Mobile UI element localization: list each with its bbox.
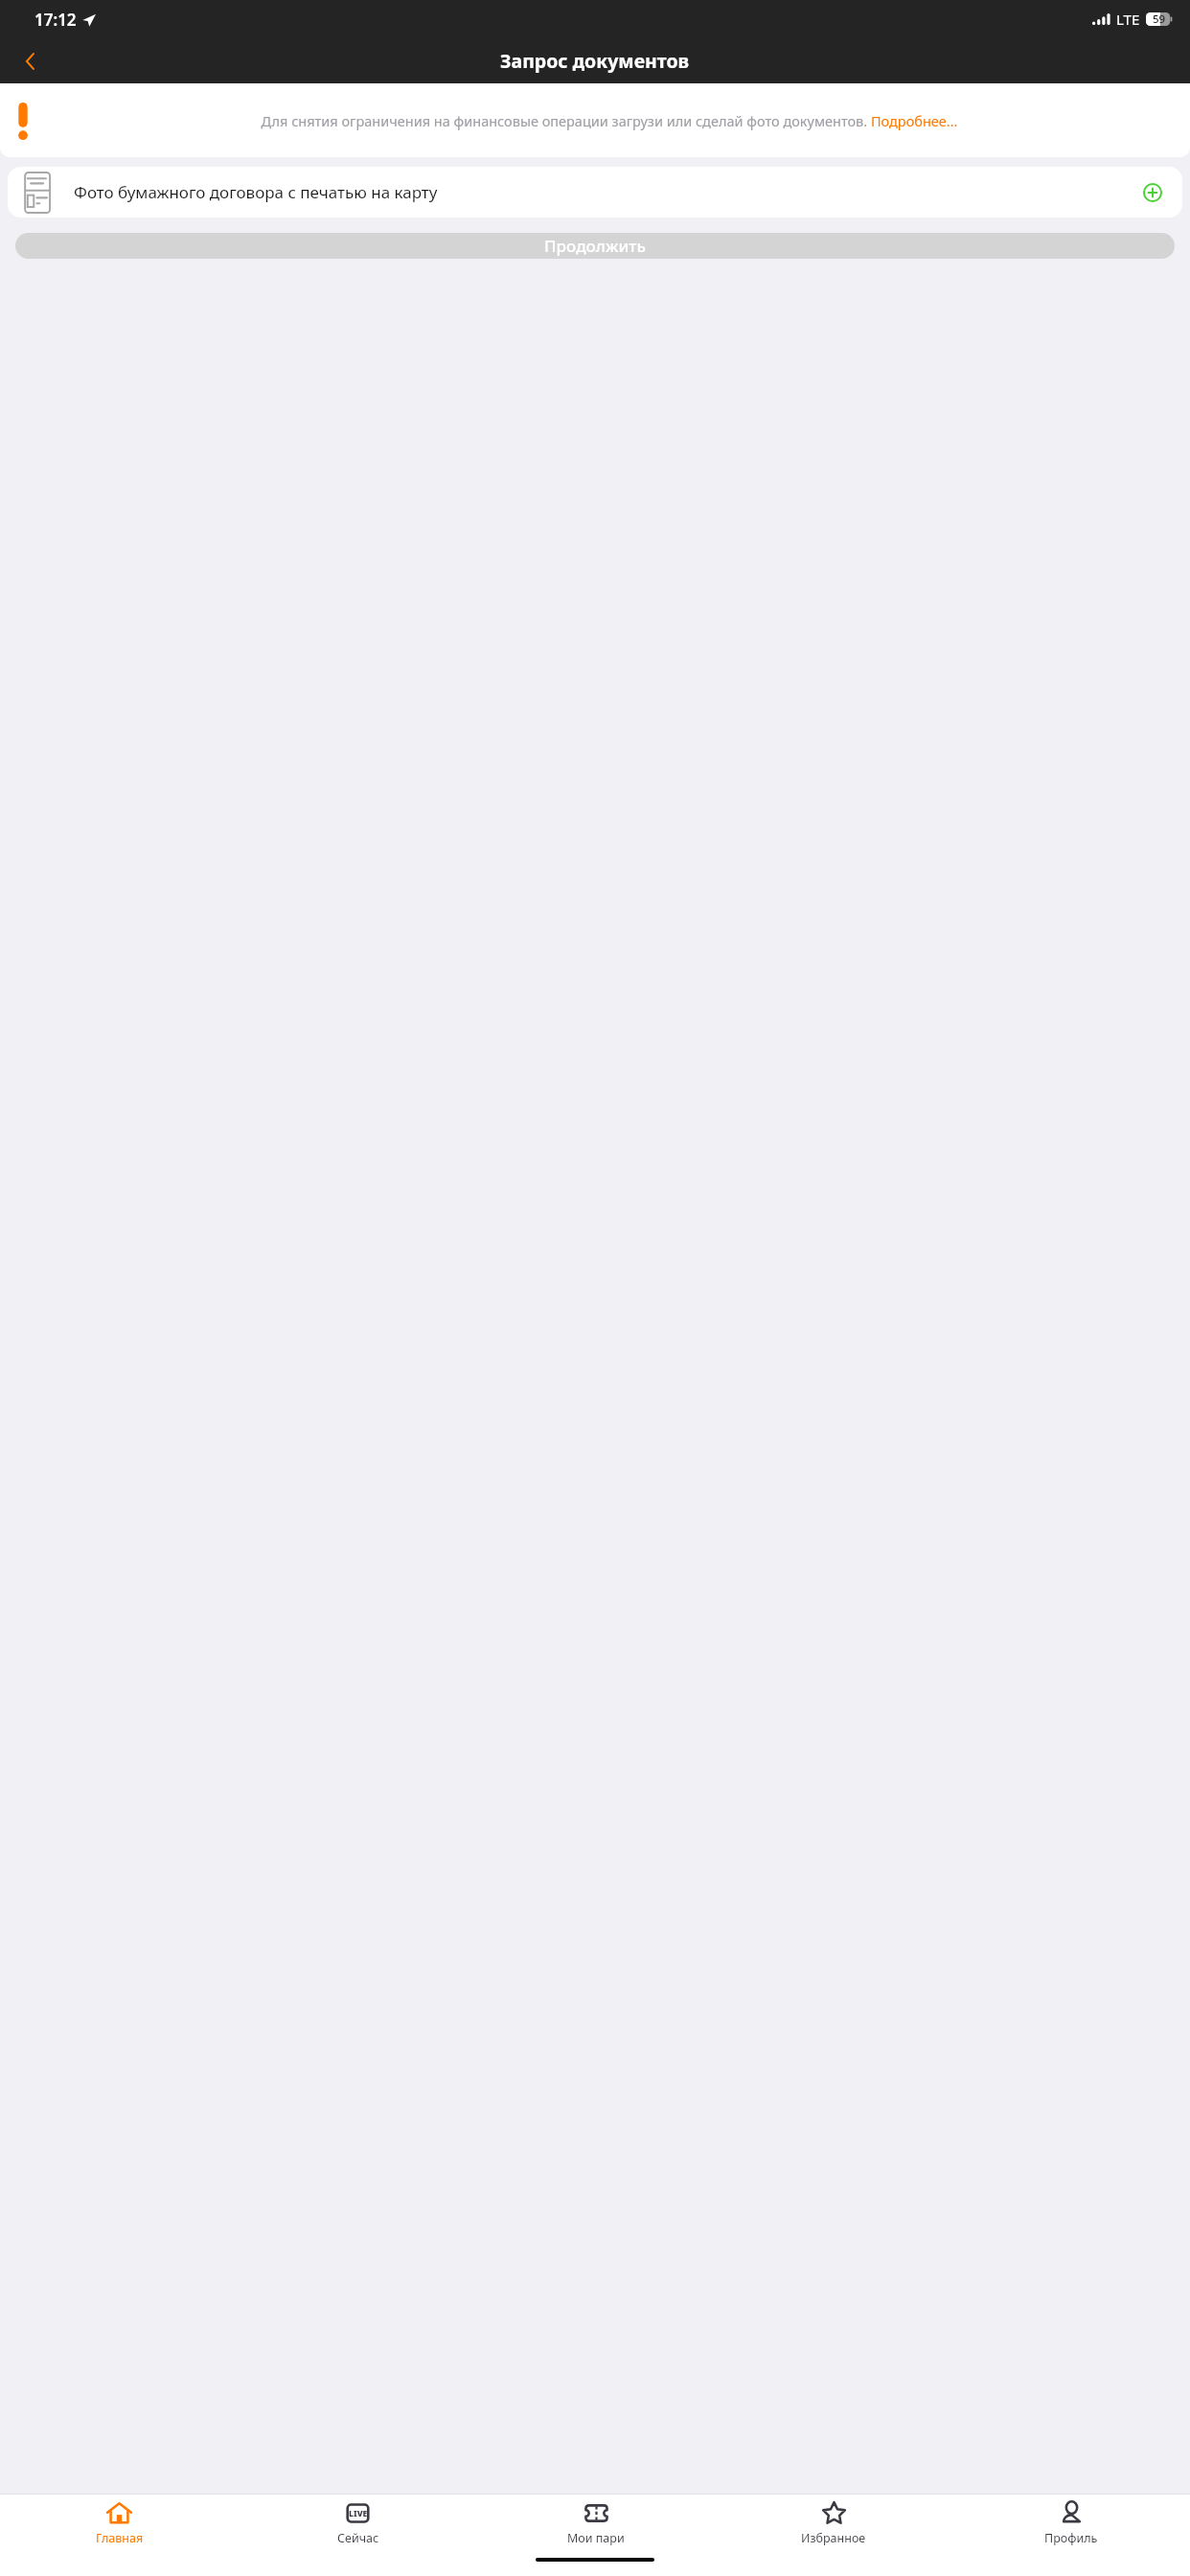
staticText: Мои пари bbox=[567, 2530, 625, 2546]
button[interactable]: Главная bbox=[0, 2495, 239, 2552]
button[interactable]: Профиль bbox=[952, 2495, 1190, 2552]
button[interactable]: Добавить документ bbox=[1137, 177, 1168, 208]
staticText: Запрос документов bbox=[500, 48, 690, 74]
staticText: Профиль bbox=[1044, 2530, 1098, 2546]
button[interactable]: LIVE bbox=[239, 2495, 477, 2552]
button[interactable]: Назад bbox=[8, 38, 54, 83]
staticText: Продолжить bbox=[544, 235, 646, 257]
button[interactable]: Фото бумажного договора с печатью на кар… bbox=[8, 167, 1182, 218]
button[interactable]: Для снятия ограничения на финансовые опе… bbox=[0, 83, 1190, 157]
staticText: Сейчас bbox=[337, 2530, 379, 2546]
button[interactable]: Мои пари bbox=[477, 2495, 715, 2552]
staticText: Для снятия ограничения на финансовые опе… bbox=[42, 111, 1177, 130]
button[interactable]: Избранное bbox=[715, 2495, 952, 2552]
staticText: Фото бумажного договора с печатью на кар… bbox=[74, 181, 1128, 203]
staticText: Избранное bbox=[801, 2530, 866, 2546]
staticText: Главная bbox=[96, 2530, 144, 2546]
staticText: 59 bbox=[1153, 11, 1166, 27]
staticText: LIVE bbox=[349, 2508, 368, 2519]
staticText: LTE bbox=[1116, 10, 1140, 29]
staticText: 17:12 bbox=[34, 9, 77, 31]
button[interactable]: Продолжить bbox=[15, 233, 1175, 259]
